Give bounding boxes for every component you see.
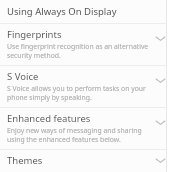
staticText: Enhanced features bbox=[7, 112, 91, 125]
button[interactable]: Expand Fingerprints bbox=[151, 28, 169, 48]
button[interactable]: Using Always On Display bbox=[0, 0, 172, 23]
button[interactable]: Expand S Voice bbox=[151, 70, 169, 90]
staticText: Fingerprints bbox=[7, 28, 62, 41]
button[interactable]: Enhanced features bbox=[0, 108, 172, 149]
button[interactable]: Expand Enhanced features bbox=[151, 112, 169, 132]
staticText: Use fingerprint recognition as an altern… bbox=[7, 42, 149, 60]
staticText: S Voice bbox=[7, 70, 39, 83]
staticText: S Voice allows you to perform tasks on y… bbox=[7, 84, 149, 102]
button[interactable]: Fingerprints bbox=[0, 24, 172, 65]
staticText: Enjoy new ways of messaging and sharing … bbox=[7, 126, 149, 144]
staticText: Using Always On Display bbox=[7, 5, 117, 18]
button[interactable]: Themes bbox=[0, 150, 172, 172]
button[interactable]: Expand Themes bbox=[151, 154, 169, 167]
button[interactable]: S Voice bbox=[0, 66, 172, 107]
staticText: Themes bbox=[7, 154, 43, 167]
